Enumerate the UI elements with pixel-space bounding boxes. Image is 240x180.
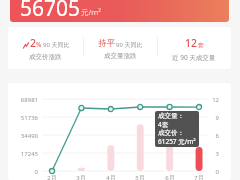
staticText: 2月 bbox=[44, 174, 60, 180]
staticText: 0 bbox=[199, 168, 219, 176]
staticText: 2 bbox=[30, 36, 37, 50]
staticText: 90 天同比 bbox=[43, 41, 70, 49]
staticText: 17245 bbox=[10, 150, 38, 158]
staticText: 34490 bbox=[10, 132, 38, 140]
staticText: 0 bbox=[10, 168, 38, 176]
staticText: 元/m² bbox=[81, 7, 101, 17]
staticText: 90 天同比 bbox=[116, 41, 143, 49]
staticText: 持平 bbox=[98, 38, 115, 49]
staticText: 51736 bbox=[10, 114, 38, 122]
staticText: 6 bbox=[199, 132, 219, 140]
staticText: 6月 bbox=[162, 174, 178, 180]
staticText: 套 bbox=[198, 41, 204, 49]
staticText: 成交量涨跌 bbox=[104, 52, 137, 60]
button[interactable]: 12 bbox=[157, 27, 231, 69]
staticText: 12 bbox=[185, 36, 198, 50]
staticText: 56705 bbox=[20, 0, 81, 22]
staticText: 12 bbox=[199, 96, 219, 104]
staticText: 近 90 天成交量 bbox=[172, 53, 216, 62]
staticText: 7月 bbox=[191, 174, 207, 180]
staticText: 5月 bbox=[132, 174, 148, 180]
staticText: 9 bbox=[199, 114, 219, 122]
staticText: 3 bbox=[199, 150, 219, 158]
button[interactable]: 56705 bbox=[10, 0, 229, 22]
staticText: 成交价： bbox=[158, 129, 184, 137]
staticText: 成交量： bbox=[158, 112, 184, 120]
button[interactable]: 持平 bbox=[83, 27, 157, 69]
button[interactable]: 2 bbox=[8, 27, 83, 69]
staticText: 4套 bbox=[158, 120, 169, 129]
staticText: % bbox=[36, 40, 42, 49]
staticText: 3月 bbox=[73, 174, 89, 180]
staticText: 61257 元/m² bbox=[158, 137, 196, 146]
staticText: 成交价涨跌 bbox=[29, 53, 62, 61]
staticText: 68981 bbox=[10, 96, 38, 104]
staticText: 4月 bbox=[103, 174, 119, 180]
